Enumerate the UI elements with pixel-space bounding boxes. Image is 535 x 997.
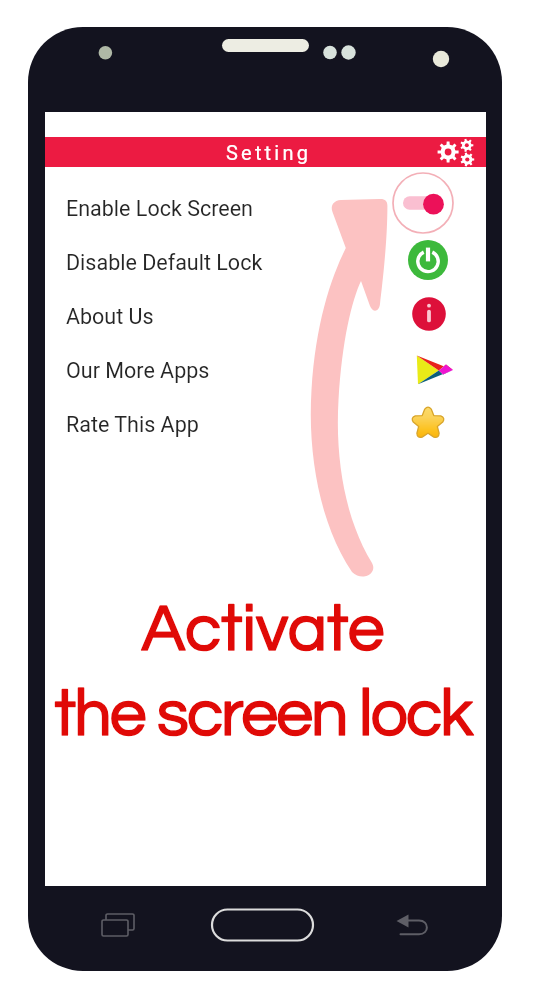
button[interactable]: Enable Lock Screen bbox=[45, 181, 486, 235]
staticText: the screen lock bbox=[54, 681, 472, 749]
staticText: Rate This App bbox=[66, 412, 199, 437]
button[interactable]: Home bbox=[205, 903, 320, 948]
staticText: Enable Lock Screen bbox=[66, 196, 253, 221]
staticText: About Us bbox=[66, 304, 154, 329]
staticText: Disable Default Lock bbox=[66, 250, 263, 275]
button[interactable]: About Us bbox=[45, 289, 486, 343]
button[interactable]: Back bbox=[388, 905, 436, 947]
staticText: Our More Apps bbox=[66, 358, 210, 383]
button[interactable]: Disable Default Lock bbox=[45, 235, 486, 289]
staticText: Activate bbox=[141, 596, 385, 664]
staticText: Setting bbox=[226, 141, 312, 164]
staticText: Activate bbox=[141, 596, 385, 664]
button[interactable]: Settings bbox=[434, 137, 486, 167]
button[interactable]: Rate This App bbox=[45, 397, 486, 451]
button[interactable]: Our More Apps bbox=[45, 343, 486, 397]
button[interactable]: Recent apps bbox=[90, 905, 142, 947]
staticText: the screen lock bbox=[54, 681, 472, 749]
